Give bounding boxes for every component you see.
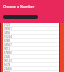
staticText: 78901 bbox=[4, 27, 12, 30]
button[interactable]: 6789 bbox=[3, 39, 59, 42]
staticText: 90123 bbox=[4, 59, 12, 62]
button[interactable]: 34567 bbox=[3, 43, 59, 46]
button[interactable]: 0123 bbox=[3, 23, 59, 26]
staticText: 01234 bbox=[4, 35, 12, 38]
staticText: 3456 bbox=[4, 31, 11, 34]
button[interactable]: 3456 bbox=[3, 31, 59, 34]
button[interactable]: 78901 bbox=[3, 27, 59, 30]
staticText: 6789 bbox=[4, 39, 11, 42]
button[interactable]: 5678 bbox=[3, 63, 59, 66]
staticText: 5678 bbox=[4, 63, 11, 66]
staticText: 34567 bbox=[4, 43, 12, 46]
button[interactable]: 23456 bbox=[3, 67, 59, 70]
button[interactable]: 01234 bbox=[3, 35, 59, 38]
staticText: 9012 bbox=[4, 47, 11, 50]
staticText: 23456 bbox=[4, 67, 12, 70]
button[interactable]: 90123 bbox=[3, 59, 59, 62]
button[interactable]: 8901 bbox=[3, 71, 59, 72]
staticText: 8901 bbox=[4, 71, 11, 72]
button[interactable]: 2345 bbox=[3, 55, 59, 58]
staticText: Choose a Number bbox=[3, 4, 35, 9]
staticText: 67890 bbox=[4, 51, 12, 54]
button[interactable]: 67890 bbox=[3, 51, 59, 54]
staticText: 2345 bbox=[4, 55, 11, 58]
button[interactable]: 9012 bbox=[3, 47, 59, 50]
staticText: 0123 bbox=[4, 23, 11, 26]
button[interactable] bbox=[3, 15, 38, 19]
